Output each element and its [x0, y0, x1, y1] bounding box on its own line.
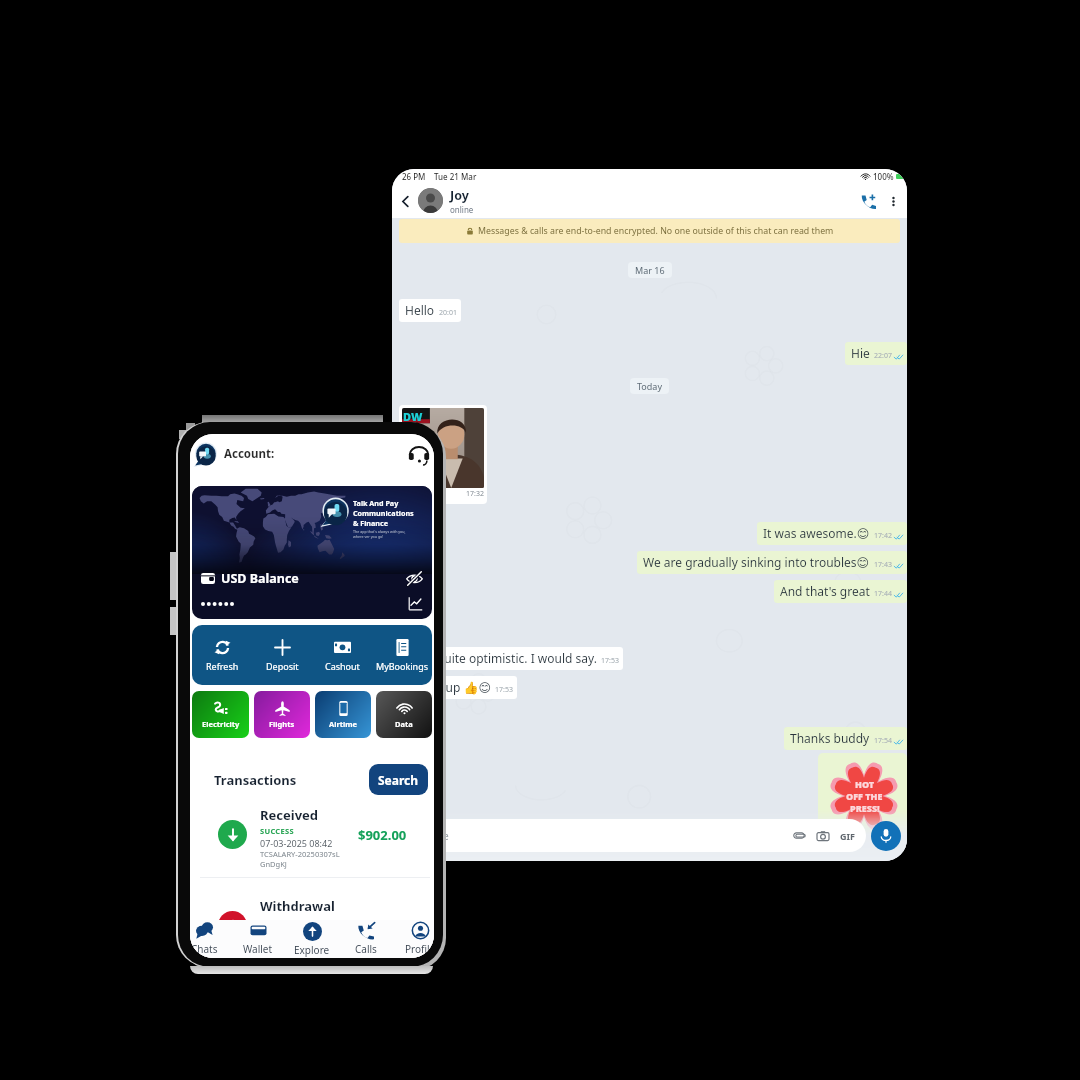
staticText: u are quite optimistic. I would say.	[405, 650, 597, 666]
button[interactable]: Flights	[254, 691, 310, 738]
staticText: Thanks buddy	[790, 730, 870, 746]
button[interactable]: And that's great	[774, 580, 907, 603]
staticText: 100%	[873, 171, 894, 182]
button[interactable]: Airtime	[315, 691, 371, 738]
staticText: Search	[378, 772, 419, 788]
button[interactable]: Refresh	[192, 625, 252, 685]
button[interactable]: Message	[397, 819, 866, 852]
staticText: Talk And Pay	[353, 498, 399, 508]
staticText: Chats	[191, 942, 218, 956]
staticText: Airtime	[329, 719, 358, 729]
staticText: $255.00	[358, 917, 407, 935]
staticText: 17:42	[874, 531, 892, 541]
button[interactable]: Search	[369, 764, 428, 795]
staticText: It was awesome.😊	[763, 525, 870, 541]
staticText: Account:	[224, 446, 275, 462]
staticText: 26 PM	[402, 171, 426, 182]
staticText: 17:43	[874, 560, 892, 570]
staticText: Tue 21 Mar	[434, 171, 477, 182]
button[interactable]: Data	[376, 691, 432, 738]
staticText: HOT	[855, 778, 875, 790]
button[interactable]: Deposit	[252, 625, 312, 685]
staticText: 17:53	[495, 685, 513, 695]
staticText: 17:32	[466, 489, 484, 499]
button[interactable]: Electricity	[192, 691, 249, 738]
button[interactable]: Talk And Pay logo	[193, 442, 218, 467]
staticText: SUCCESS	[260, 917, 294, 927]
button[interactable]: Hello	[399, 299, 461, 322]
button[interactable]: Support	[408, 443, 430, 465]
staticText: Hie	[851, 345, 870, 361]
staticText: Refresh	[206, 660, 239, 672]
button[interactable]: Contact photo	[418, 188, 443, 213]
button[interactable]: Received	[190, 806, 434, 869]
staticText: SUCCESS	[260, 826, 294, 836]
staticText: Wallet	[243, 942, 273, 956]
staticText: s spirit up 👍😊	[405, 679, 491, 695]
staticText: where ver you go!	[353, 534, 384, 539]
staticText: And that's great	[780, 583, 870, 599]
staticText: We are gradually sinking into troubles😊	[643, 554, 870, 570]
button[interactable]: Statistics	[408, 596, 423, 611]
staticText: & Finance	[353, 518, 389, 528]
staticText: TCSALARY-20250307sL	[260, 849, 340, 859]
button[interactable]: Calls	[339, 920, 393, 958]
staticText: GIF	[840, 830, 855, 842]
staticText: Profile	[405, 942, 434, 956]
staticText: Calls	[355, 942, 377, 956]
button[interactable]: It was awesome.😊	[757, 522, 907, 545]
staticText: The app that's always with you,	[353, 529, 406, 534]
button[interactable]: Hie	[845, 342, 907, 365]
button[interactable]: Voice message	[871, 821, 901, 851]
staticText: DW	[403, 409, 423, 424]
staticText: Communications	[353, 508, 414, 518]
staticText: $902.00	[358, 826, 407, 844]
button[interactable]: MyBookings	[372, 625, 432, 685]
button[interactable]: Explore	[285, 920, 339, 958]
staticText: 17:53	[601, 656, 619, 666]
staticText: Joy	[450, 187, 469, 204]
staticText: 20:01	[439, 308, 457, 318]
staticText: Mar 16	[635, 264, 665, 276]
staticText: Received	[260, 806, 319, 824]
staticText: Message	[407, 829, 449, 843]
button[interactable]: More options	[884, 192, 902, 210]
button[interactable]: s spirit up 👍😊	[399, 676, 517, 699]
staticText: 17:44	[874, 589, 892, 599]
staticText: MyBookings	[376, 660, 429, 672]
staticText: Hello	[405, 302, 435, 318]
staticText: 17:54	[874, 736, 892, 746]
staticText: USD Balance	[221, 570, 299, 587]
staticText: 22:07	[874, 351, 892, 361]
button[interactable]: Video call	[855, 188, 881, 214]
staticText: Flights	[269, 719, 295, 729]
staticText: Data	[395, 719, 413, 729]
staticText: Deposit	[266, 660, 299, 672]
staticText: PRESS!	[850, 802, 880, 814]
staticText: online	[450, 204, 474, 215]
staticText: Messages & calls are end-to-end encrypte…	[478, 225, 834, 237]
button[interactable]: Cashout	[312, 625, 372, 685]
staticText: Explore	[294, 943, 330, 957]
button[interactable]: Hide balance	[406, 570, 423, 587]
button[interactable]: Wallet	[231, 920, 285, 958]
button[interactable]: Talk And Pay	[192, 486, 432, 619]
button[interactable]: Thanks buddy	[784, 727, 907, 750]
staticText: Today	[637, 380, 662, 392]
button[interactable]: Back	[392, 188, 418, 214]
staticText: Withdrawal	[260, 897, 335, 915]
staticText: Transactions	[214, 771, 297, 789]
staticText: OFF THE	[846, 790, 883, 802]
button[interactable]: u are quite optimistic. I would say.	[399, 647, 623, 670]
button[interactable]: Chats	[190, 920, 231, 958]
staticText: GnDgKJ	[260, 859, 287, 869]
button[interactable]: We are gradually sinking into troubles😊	[637, 551, 907, 574]
button[interactable]: Withdrawal	[190, 897, 434, 935]
staticText: Cashout	[325, 660, 360, 672]
staticText: 07-03-2025 08:42	[260, 837, 333, 849]
staticText: Electricity	[202, 719, 240, 729]
button[interactable]: Profile	[393, 920, 434, 958]
